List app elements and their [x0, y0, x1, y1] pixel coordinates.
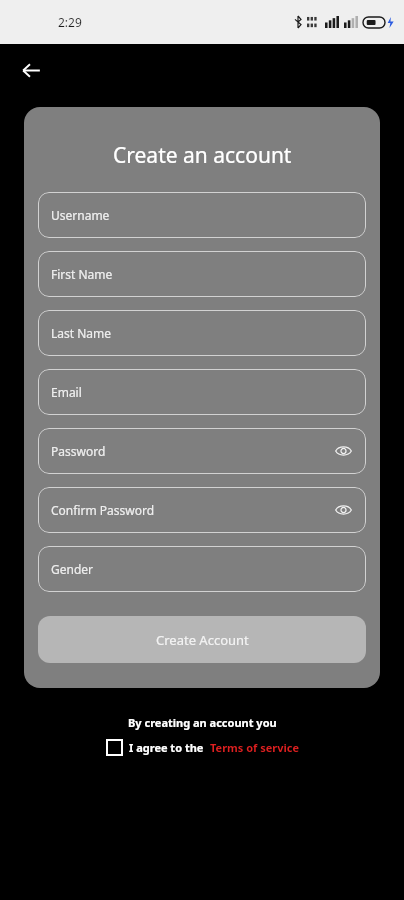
staticText: Gender [51, 561, 94, 577]
button[interactable]: Confirm Password [38, 487, 366, 533]
staticText: Email [51, 384, 82, 400]
button[interactable]: First Name [38, 251, 366, 297]
staticText: By creating an account you [128, 715, 277, 730]
button[interactable]: Email [38, 369, 366, 415]
staticText: First Name [51, 266, 113, 282]
other: Agree to terms checkbox [105, 738, 123, 756]
button[interactable]: Last Name [38, 310, 366, 356]
staticText: Create an account [113, 141, 292, 170]
staticText: Username [51, 207, 110, 223]
button[interactable]: Create Account [38, 616, 366, 663]
button[interactable]: Username [38, 192, 366, 238]
staticText: 2:29 [58, 14, 82, 30]
button[interactable]: Gender [38, 546, 366, 592]
button[interactable]: Password [38, 428, 366, 474]
staticText: I agree to the [129, 740, 204, 755]
staticText: Password [51, 443, 106, 459]
button[interactable]: Agree to terms checkbox [105, 738, 299, 756]
staticText: Terms of service [210, 740, 299, 755]
staticText: Confirm Password [51, 502, 155, 518]
staticText: Create Account [156, 631, 249, 649]
button[interactable]: Back [14, 53, 48, 87]
button[interactable]: Toggle password visibility [330, 497, 356, 523]
staticText: Last Name [51, 325, 112, 341]
button[interactable]: Toggle password visibility [330, 438, 356, 464]
